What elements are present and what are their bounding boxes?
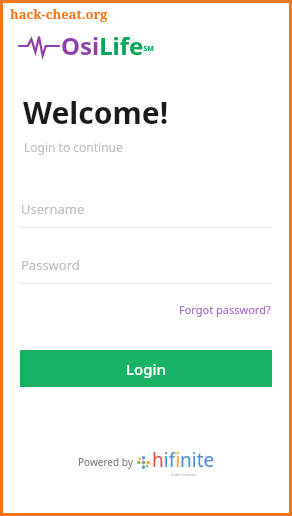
staticText: Forgot password?	[179, 302, 271, 317]
staticText: Username	[21, 200, 85, 218]
staticText: hifinite	[152, 447, 215, 473]
staticText: Welcome!	[23, 92, 169, 133]
staticText: hack-cheat.org	[10, 5, 108, 23]
button[interactable]: Username	[3, 200, 289, 228]
staticText: Login to continue	[24, 139, 123, 155]
staticText: Health Connected	[171, 473, 197, 477]
button[interactable]: Login	[20, 350, 272, 387]
staticText: Login	[126, 359, 166, 379]
button[interactable]: Forgot password?	[175, 300, 275, 319]
button[interactable]: Password	[3, 256, 289, 284]
staticText: Powered by	[78, 455, 133, 469]
other: Hifinite logo	[137, 456, 150, 469]
staticText: OsiLifeSM	[61, 29, 154, 62]
staticText: Password	[21, 256, 80, 274]
